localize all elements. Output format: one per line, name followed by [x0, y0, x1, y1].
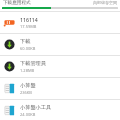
- staticText: 下載: [20, 38, 31, 45]
- other: Download: [4, 61, 15, 72]
- button[interactable]: Calculator: [0, 100, 120, 120]
- button[interactable]: Download: [0, 34, 120, 55]
- staticText: 236KB: [20, 90, 32, 95]
- other: 116114 app icon: [4, 17, 15, 28]
- button[interactable]: Calculator: [0, 78, 120, 99]
- staticText: 1.28MB: [20, 68, 35, 73]
- staticText: 下載管理員: [20, 60, 46, 67]
- staticText: 24.00KB: [20, 112, 36, 117]
- other: Calculator: [4, 83, 15, 94]
- staticText: 小算盤: [20, 82, 36, 89]
- button[interactable]: 下載應用程式: [0, 0, 120, 11]
- other: Calculator: [4, 105, 15, 116]
- staticText: 小算盤小工具: [20, 104, 52, 111]
- staticText: 下載應用程式: [3, 0, 31, 6]
- button[interactable]: Download: [0, 56, 120, 77]
- staticText: 內部儲存空間: [93, 0, 117, 5]
- staticText: 60.00KB: [20, 46, 36, 51]
- staticText: 116114: [20, 16, 38, 23]
- staticText: 17.59MB: [20, 24, 37, 29]
- button[interactable]: 116114 app icon: [0, 12, 120, 33]
- other: Download: [4, 39, 15, 50]
